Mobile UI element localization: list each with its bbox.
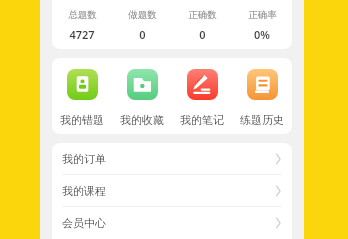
staticText: 0 [199,27,206,42]
other: 我的课程 [275,185,282,197]
staticText: 正确数 [188,9,217,21]
button[interactable]: 我的收藏 [112,58,172,134]
other: 会员中心 [275,217,282,229]
button[interactable]: 正确数 [172,0,232,49]
button[interactable]: 我的课程 [52,175,292,207]
button[interactable]: 我的订单 [52,143,292,175]
button[interactable]: 总题数 [52,0,112,49]
button[interactable]: 正确率 [232,0,292,49]
staticText: 我的错题 [60,113,104,127]
staticText: 我的课程 [62,184,106,198]
staticText: 会员中心 [62,216,106,230]
button[interactable]: 我的笔记 [172,58,232,134]
staticText: 我的笔记 [180,113,224,127]
staticText: 我的收藏 [120,113,164,127]
button[interactable]: 练题历史 [232,58,292,134]
button[interactable]: 会员中心 [52,207,292,239]
staticText: 4727 [69,27,95,42]
other: 我的订单 [275,153,282,165]
staticText: 练题历史 [240,113,284,127]
staticText: 0% [254,27,270,42]
staticText: 做题数 [128,9,157,21]
staticText: 0 [139,27,146,42]
staticText: 总题数 [68,9,97,21]
staticText: 我的订单 [62,152,106,166]
staticText: 正确率 [248,9,277,21]
button[interactable]: 做题数 [112,0,172,49]
button[interactable]: 我的错题 [52,58,112,134]
